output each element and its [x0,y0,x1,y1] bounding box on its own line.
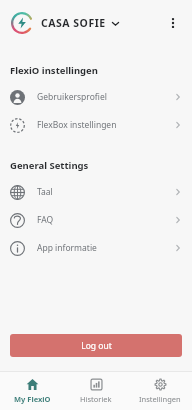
staticText: FlexBox instellingen [37,119,174,131]
button[interactable]: FAQ [0,206,192,234]
button[interactable]: Instellingen [128,372,192,410]
button[interactable]: Historiek [64,372,128,410]
button[interactable]: App informatie [0,234,192,262]
staticText: FlexiO instellingen [10,64,98,77]
staticText: CASA SOFIE [41,16,106,30]
staticText: General Settings [10,159,89,172]
staticText: Instellingen [139,394,181,404]
staticText: Log out [81,340,112,352]
button[interactable]: CASA SOFIE [9,10,122,36]
staticText: Historiek [80,394,112,404]
staticText: App informatie [37,242,174,254]
staticText: Gebruikersprofiel [37,91,174,103]
button[interactable]: FlexBox instellingen [0,111,192,139]
staticText: Taal [37,186,174,198]
button[interactable]: My FlexiO [0,372,64,410]
button[interactable]: Gebruikersprofiel [0,83,192,111]
button[interactable]: Taal [0,178,192,206]
staticText: FAQ [37,214,174,226]
button[interactable]: Log out [10,334,182,357]
staticText: My FlexiO [14,394,51,404]
button[interactable]: More options [160,10,186,36]
